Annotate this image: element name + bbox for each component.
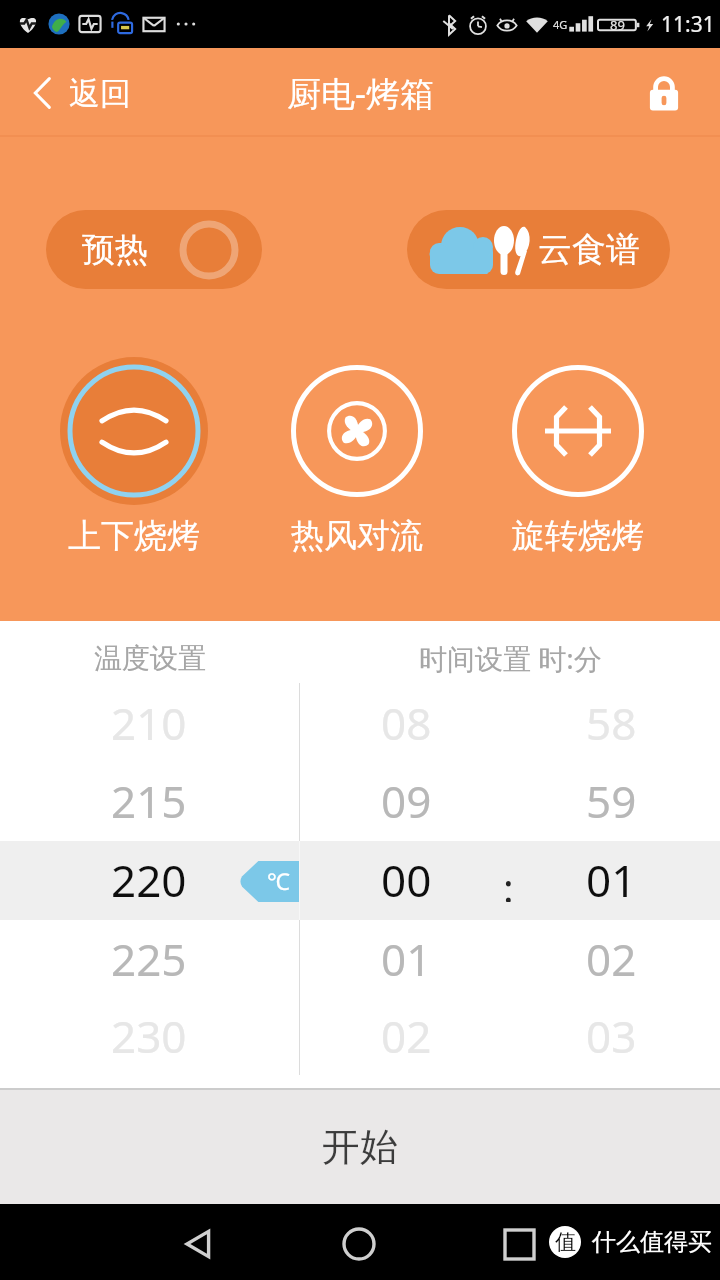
staticText: 58 [586,693,637,753]
staticText: 厨电-烤箱 [287,70,434,116]
staticText: 01 [586,850,637,910]
button[interactable]: 上下烧烤 [34,356,234,557]
staticText: 什么值得买 [592,1227,712,1257]
staticText: 89 [610,16,625,34]
staticText: 01 [381,929,432,989]
staticText: 225 [111,929,187,989]
button[interactable]: 230 [69,1005,229,1067]
button[interactable]: 09 [326,770,486,832]
button[interactable]: 210 [69,692,229,754]
button[interactable]: 02 [326,1005,486,1067]
staticText: 03 [586,1006,637,1066]
button[interactable]: 旋转烧烤 [478,356,678,557]
button[interactable]: 225 [69,928,229,990]
staticText: 00 [381,850,432,910]
button[interactable]: 云食谱 [407,210,670,289]
button[interactable]: 01 [531,849,691,911]
button[interactable]: 00 [326,849,486,911]
staticText: 215 [111,771,187,831]
button[interactable]: 01 [326,928,486,990]
staticText: 时间设置 时:分 [419,639,602,677]
staticText: ℃ [267,865,290,896]
staticText: 4G [553,17,568,32]
staticText: 09 [381,771,432,831]
staticText: 230 [111,1006,187,1066]
staticText: 开始 [322,1123,398,1171]
staticText: 值 [555,1229,576,1255]
staticText: 预热 [82,229,148,271]
staticText: 220 [111,850,187,910]
staticText: : [503,860,514,902]
staticText: 旋转烧烤 [512,515,644,557]
button[interactable]: 59 [531,770,691,832]
button[interactable]: Lock [636,65,692,121]
staticText: 返回 [69,74,131,113]
button[interactable]: 热风对流 [257,356,457,557]
button[interactable]: 220 [69,849,229,911]
button[interactable]: 215 [69,770,229,832]
staticText: 59 [586,771,637,831]
staticText: 温度设置 [94,641,206,676]
button[interactable]: Back [169,1214,229,1274]
staticText: 02 [381,1006,432,1066]
staticText: 云食谱 [538,228,640,271]
button[interactable]: 58 [531,692,691,754]
staticText: 08 [381,693,432,753]
staticText: 热风对流 [291,515,423,557]
staticText: 02 [586,929,637,989]
button[interactable]: 02 [531,928,691,990]
staticText: 11:31 [661,10,715,39]
button[interactable]: 03 [531,1005,691,1067]
button[interactable]: Recents [489,1214,549,1274]
button[interactable]: 开始 [0,1090,720,1204]
button[interactable]: 返回 [34,57,131,129]
staticText: 210 [111,693,187,753]
staticText: 上下烧烤 [68,515,200,557]
button[interactable]: 08 [326,692,486,754]
button[interactable]: Home [329,1214,389,1274]
button[interactable]: 预热 [46,210,262,289]
